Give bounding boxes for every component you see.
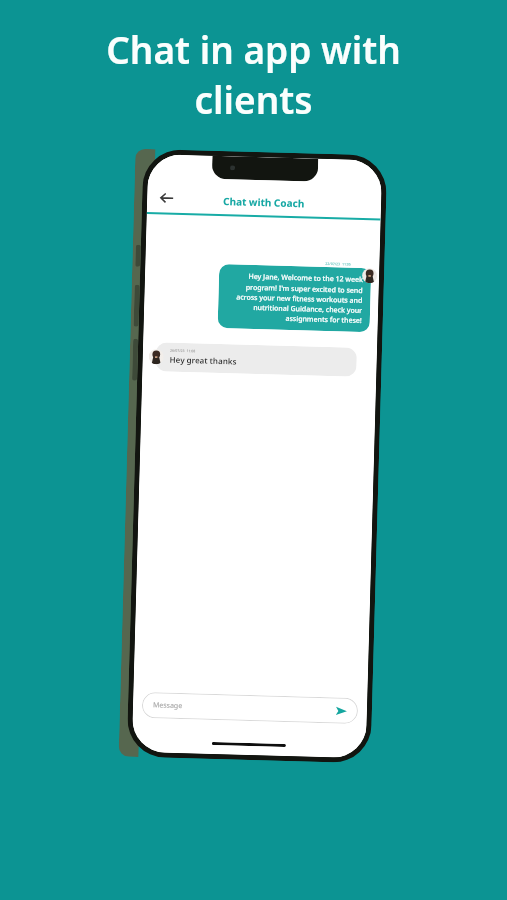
staticText: Chat in app with xyxy=(106,24,401,74)
staticText: Hey Jane, Welcome to the 12 week program… xyxy=(226,271,363,325)
button[interactable]: Message xyxy=(142,692,358,724)
button[interactable]: Hey Jane, Welcome to the 12 week program… xyxy=(218,264,371,332)
button[interactable]: Back xyxy=(153,184,179,211)
staticText: 22/07/23 11:05 xyxy=(325,261,351,267)
staticText: 26/07/23 11:08 xyxy=(170,348,196,353)
button[interactable]: 26/07/23 11:08 xyxy=(155,342,357,377)
button[interactable]: Send xyxy=(333,702,349,719)
staticText: Chat with Coach xyxy=(223,194,305,210)
staticText: Hey great thanks xyxy=(169,354,237,366)
staticText: Message xyxy=(153,700,183,711)
staticText: clients xyxy=(194,74,313,124)
